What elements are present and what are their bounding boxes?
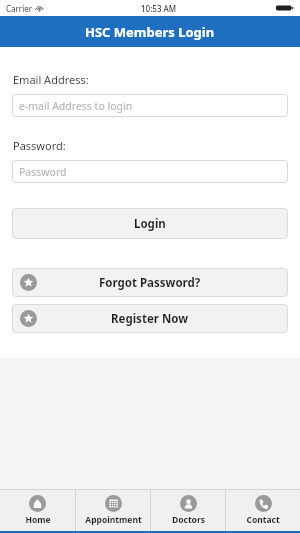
button[interactable]: Forgot Password? (12, 268, 288, 297)
staticText: Contact (246, 514, 280, 526)
staticText: 10:53 AM (141, 3, 177, 14)
button[interactable]: Contact (226, 490, 300, 531)
button[interactable]: Doctors (151, 490, 225, 531)
button[interactable]: Register Now (12, 304, 288, 333)
staticText: Login (134, 216, 166, 232)
staticText: HSC Members Login (85, 23, 215, 41)
button[interactable]: Home (0, 490, 75, 531)
staticText: Appointment (85, 514, 142, 526)
staticText: Carrier (6, 3, 33, 14)
staticText: Email Address: (13, 72, 89, 87)
staticText: Password: (13, 138, 66, 153)
staticText: e-mail Address to login (19, 99, 133, 113)
button[interactable]: e-mail Address to login (12, 94, 288, 117)
button[interactable]: Password (12, 160, 288, 183)
staticText: Password (19, 165, 67, 179)
staticText: Home (25, 514, 51, 526)
staticText: Doctors (172, 514, 205, 526)
button[interactable]: Appointment (76, 490, 150, 531)
button[interactable]: Login (12, 208, 288, 239)
staticText: Forgot Password? (99, 275, 201, 291)
staticText: Register Now (111, 311, 189, 327)
